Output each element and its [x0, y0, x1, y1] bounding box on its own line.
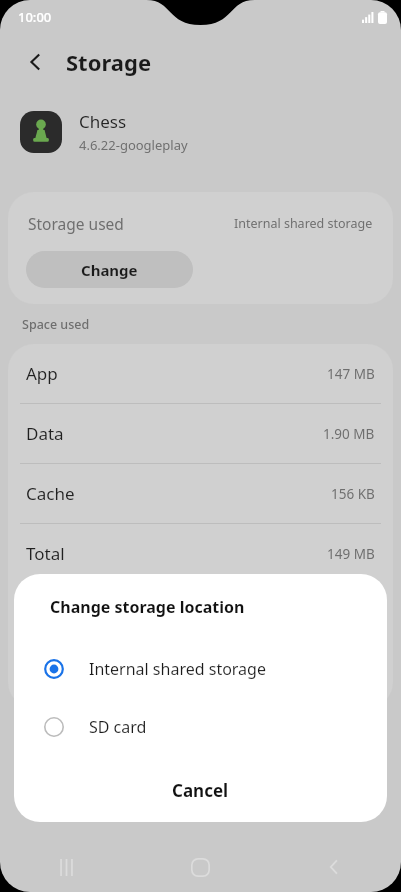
staticText: Internal shared storage	[89, 658, 266, 680]
staticText: Cancel	[172, 779, 229, 802]
button[interactable]: Data	[8, 403, 393, 463]
staticText: Cache	[26, 482, 75, 505]
staticText: Chess	[79, 110, 127, 133]
button[interactable]: Change	[26, 251, 193, 288]
staticText: Space used	[22, 316, 90, 333]
staticText: 147 MB	[327, 365, 375, 383]
button[interactable]: App	[8, 344, 393, 403]
staticText: App	[26, 362, 58, 385]
staticText: Total	[26, 542, 65, 565]
button[interactable]: Back	[267, 842, 401, 892]
staticText: Storage used	[28, 213, 124, 234]
button[interactable]: Cache	[8, 463, 393, 523]
button[interactable]: Cancel	[14, 764, 387, 816]
button[interactable]: Recent apps	[0, 842, 133, 892]
button[interactable]: Internal shared storage	[14, 640, 387, 698]
staticText: SD card	[89, 716, 147, 738]
staticText: 4.6.22-googleplay	[79, 136, 188, 154]
button[interactable]: Total	[8, 523, 393, 583]
staticText: Storage	[66, 47, 152, 77]
staticText: 149 MB	[327, 545, 375, 563]
button[interactable]: Back	[16, 42, 56, 82]
button[interactable]: SD card	[14, 698, 387, 756]
staticText: 1.90 MB	[323, 425, 375, 443]
staticText: Data	[26, 422, 64, 445]
staticText: Change storage location	[50, 596, 245, 618]
staticText: Internal shared storage	[234, 215, 373, 232]
staticText: 156 KB	[331, 485, 375, 503]
staticText: Clear cache	[236, 675, 313, 694]
staticText: Change	[81, 260, 138, 280]
staticText: 10:00	[18, 8, 52, 26]
